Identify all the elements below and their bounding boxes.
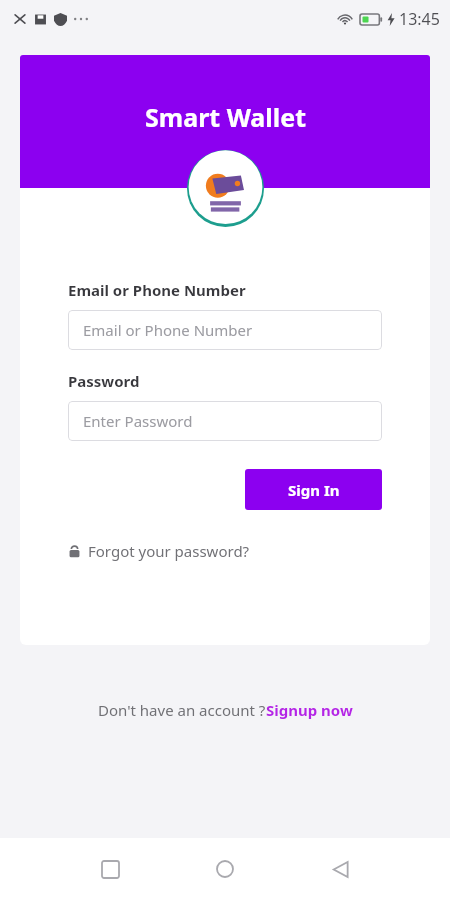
staticText: 13:45 xyxy=(399,8,440,30)
button[interactable]: Home xyxy=(205,849,245,889)
staticText: Email or Phone Number xyxy=(83,320,253,340)
staticText: Signup now xyxy=(266,700,353,720)
staticText: Email or Phone Number xyxy=(68,280,246,300)
button[interactable]: Back xyxy=(320,849,360,889)
staticText: Password xyxy=(68,371,140,391)
staticText: Forgot your password? xyxy=(88,541,250,561)
button[interactable]: Enter Password xyxy=(68,401,382,441)
button[interactable]: Recent apps xyxy=(90,849,130,889)
staticText: Sign In xyxy=(288,480,340,500)
staticText: Enter Password xyxy=(83,411,193,431)
staticText: Don't have an account ? xyxy=(98,700,266,720)
button[interactable]: Sign In xyxy=(245,469,382,510)
button[interactable]: Email or Phone Number xyxy=(68,310,382,350)
staticText: Smart Wallet xyxy=(145,100,306,134)
button[interactable]: Forgot your password? xyxy=(68,541,250,561)
button[interactable]: Signup now xyxy=(266,700,353,720)
